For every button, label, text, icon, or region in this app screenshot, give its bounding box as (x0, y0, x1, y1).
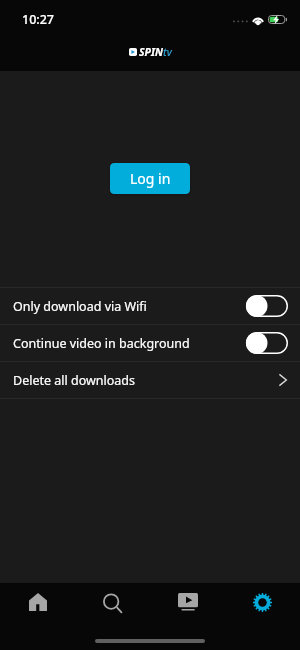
staticText: SPIN (139, 45, 163, 59)
staticText: Log in (130, 169, 171, 188)
button[interactable]: Settings (225, 583, 300, 621)
button[interactable]: Home (0, 583, 75, 621)
button[interactable]: Delete all downloads (0, 362, 300, 398)
staticText: Only download via Wifi (13, 298, 147, 315)
staticText: Delete all downloads (13, 372, 136, 389)
button[interactable]: Only download via Wifi (0, 288, 300, 324)
button[interactable]: Log in (110, 163, 190, 194)
button[interactable]: Search (75, 583, 150, 621)
staticText: 10:27 (22, 11, 55, 28)
staticText: Continue video in background (13, 335, 190, 352)
staticText: tv (163, 45, 172, 59)
button[interactable]: Library (150, 583, 225, 621)
button[interactable]: Continue video in background (0, 325, 300, 361)
